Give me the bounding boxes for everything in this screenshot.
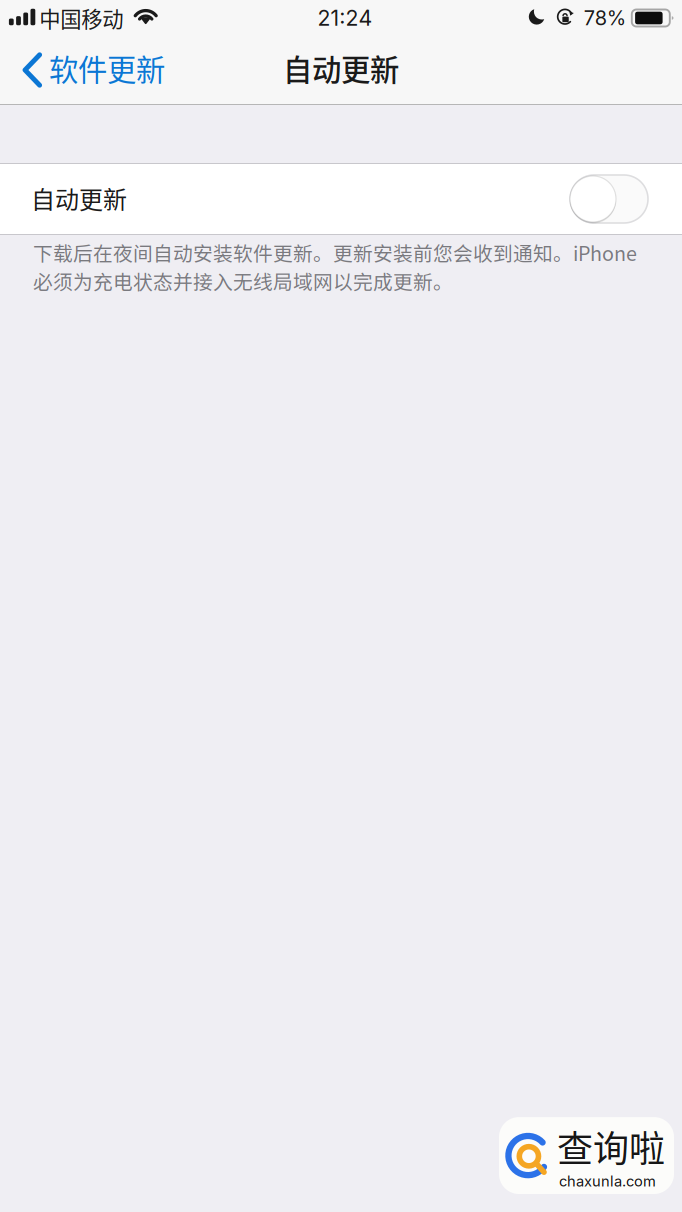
button[interactable]: 软件更新: [0, 36, 181, 104]
staticText: 查询啦: [557, 1120, 665, 1172]
button[interactable]: 0: [0, 164, 682, 234]
staticText: 中国移动: [39, 3, 123, 33]
staticText: chaxunla.com: [559, 1172, 656, 1190]
staticText: 下载后在夜间自动安装软件更新。更新安装前您会收到通知。iPhone必须为充电状态…: [33, 238, 637, 295]
staticText: 21:24: [317, 5, 372, 31]
staticText: 自动更新: [31, 181, 127, 215]
staticText: 自动更新: [283, 47, 399, 89]
staticText: 78%: [584, 6, 626, 30]
staticText: 软件更新: [49, 47, 165, 89]
